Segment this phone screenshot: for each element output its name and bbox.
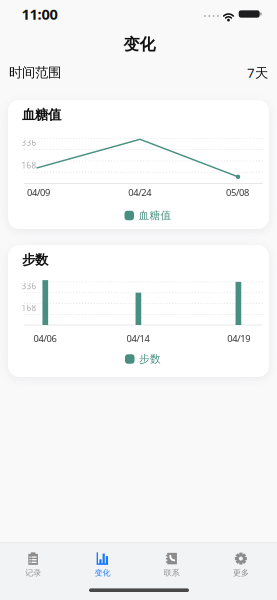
staticText: 时间范围 <box>9 64 61 81</box>
button[interactable]: 时间范围 <box>9 61 268 83</box>
staticText: 变化 <box>123 35 155 54</box>
staticText: 336 <box>21 137 36 148</box>
staticText: 04/19 <box>227 332 250 345</box>
staticText: 336 <box>21 281 36 291</box>
staticText: 04/06 <box>33 332 56 345</box>
staticText: 7天 <box>247 64 268 81</box>
button[interactable]: 记录 <box>0 545 68 585</box>
staticText: 11:00 <box>21 4 57 24</box>
staticText: 04/24 <box>128 186 151 199</box>
staticText: 步数 <box>22 251 48 268</box>
button[interactable]: 联系 <box>137 545 206 585</box>
staticText: 变化 <box>94 568 110 578</box>
staticText: 05/08 <box>226 186 249 199</box>
button[interactable]: 变化 <box>68 545 137 585</box>
staticText: 168 <box>21 160 36 171</box>
staticText: 步数 <box>139 352 161 365</box>
staticText: 04/09 <box>27 186 50 199</box>
staticText: 联系 <box>164 568 180 578</box>
staticText: 血糖值 <box>138 209 171 222</box>
staticText: 更多 <box>233 568 249 578</box>
staticText: 168 <box>21 303 36 313</box>
button[interactable]: 更多 <box>206 545 275 585</box>
staticText: 04/14 <box>127 332 150 345</box>
staticText: 记录 <box>25 568 41 578</box>
staticText: 血糖值 <box>22 106 61 123</box>
